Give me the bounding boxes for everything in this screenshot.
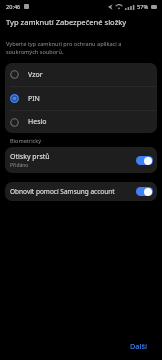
staticText: 20:46 [6,3,21,11]
staticText: Otisky prstů [10,152,50,162]
button[interactable]: Obnovit pomocí Samsung account [5,182,157,201]
button[interactable]: PIN [5,87,157,110]
staticText: Biometrický [10,137,42,145]
staticText: Vyberte typ zamknutí pro ochranu aplikac… [6,40,126,55]
button[interactable]: Toggle [136,187,153,196]
staticText: Typ zamknutí Zabezpečené složky [6,17,127,27]
button[interactable]: Vzor [5,63,157,86]
staticText: Přidáno [10,162,29,169]
button[interactable]: Otisky prstů [5,147,157,173]
staticText: 57% [137,3,149,11]
button[interactable]: Další [124,337,153,355]
button[interactable]: Heslo [5,111,157,133]
staticText: PIN [28,94,40,104]
staticText: Obnovit pomocí Samsung account [10,187,132,196]
staticText: Další [130,341,147,351]
staticText: Heslo [28,117,47,127]
staticText: Vzor [28,70,43,80]
button[interactable]: Toggle [136,156,153,165]
